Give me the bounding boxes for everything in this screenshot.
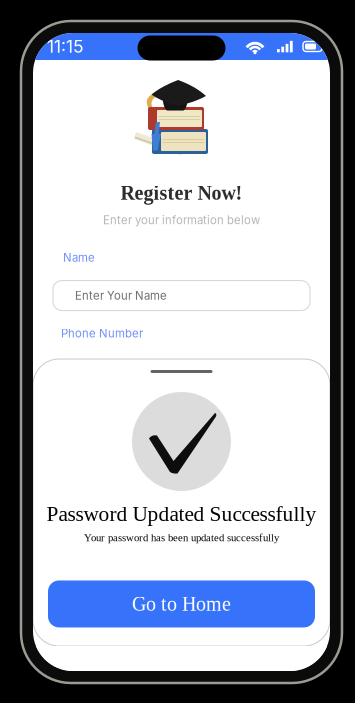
staticText: 11:15 xyxy=(47,36,84,57)
staticText: Phone Number xyxy=(61,327,143,340)
button[interactable]: Go to Home xyxy=(48,580,315,627)
staticText: Name xyxy=(63,251,95,265)
staticText: Your password has been updated successfu… xyxy=(84,532,279,543)
staticText: Password Updated Successfully xyxy=(46,502,316,526)
staticText: Register Now! xyxy=(120,182,242,204)
staticText: Enter your information below xyxy=(103,213,260,227)
staticText: Go to Home xyxy=(132,593,231,615)
staticText: Enter Your Name xyxy=(75,289,167,302)
